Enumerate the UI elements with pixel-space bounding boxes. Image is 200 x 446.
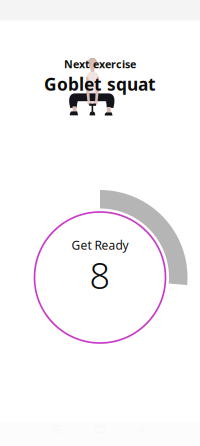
staticText: Next exercise [64, 57, 136, 71]
staticText: Get Ready [71, 237, 128, 253]
staticText: 8 [89, 251, 110, 299]
staticText: Goblet squat [44, 72, 156, 95]
